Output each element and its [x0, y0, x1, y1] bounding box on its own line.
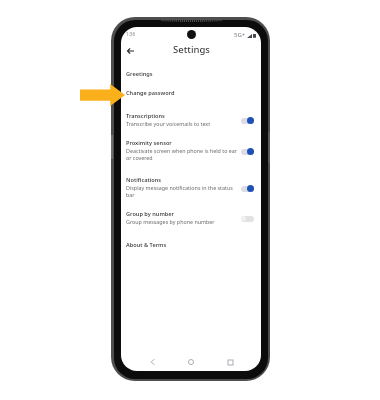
staticText: Greetings [126, 70, 153, 78]
button[interactable]: Transcriptions [126, 112, 256, 127]
button[interactable]: Group by number [126, 210, 256, 225]
staticText: Change password [126, 89, 175, 97]
button[interactable]: About & Terms [126, 230, 256, 260]
button[interactable]: Home [184, 355, 198, 369]
button[interactable]: Back [123, 44, 137, 58]
staticText: 5G+ [234, 31, 246, 39]
staticText: 1:36 [126, 31, 136, 37]
staticText: or covered [126, 154, 153, 161]
staticText: Group by number [126, 210, 174, 218]
staticText: Transcribe your voicemails to text [126, 120, 211, 127]
button[interactable]: Proximity sensor [126, 139, 256, 161]
button[interactable]: Recent apps [223, 355, 237, 369]
staticText: Transcriptions [126, 112, 165, 120]
button[interactable]: Greetings [126, 65, 256, 82]
staticText: Notifications [126, 176, 162, 184]
staticText: Settings [173, 43, 210, 56]
staticText: Proximity sensor [126, 139, 172, 147]
button[interactable]: Change password [126, 82, 256, 104]
staticText: bar [126, 191, 135, 198]
staticText: Group messages by phone number [126, 218, 215, 225]
staticText: Deactivate screen when phone is held to … [126, 147, 237, 154]
staticText: About & Terms [126, 241, 167, 249]
button[interactable]: Notifications [126, 176, 256, 198]
staticText: Display message notifications in the sta… [126, 184, 233, 191]
button[interactable]: Back [145, 355, 159, 369]
